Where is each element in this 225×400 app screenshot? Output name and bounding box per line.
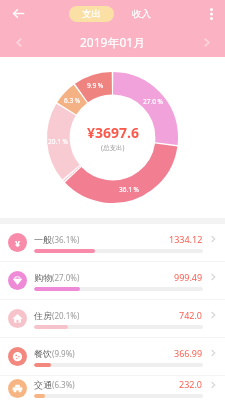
staticText: 9.9 % (87, 81, 104, 90)
button[interactable]: More options (197, 0, 225, 27)
staticText: (27.0%) (52, 272, 80, 283)
staticText: ¥3697.6 (87, 123, 139, 142)
staticText: 999.49 (174, 271, 203, 283)
staticText: 6.3 % (64, 96, 81, 105)
staticText: (总支出) (101, 143, 125, 152)
staticText: (6.3%) (52, 379, 75, 390)
staticText: 住房 (34, 310, 52, 321)
button[interactable]: 餐饮 (0, 338, 225, 375)
button[interactable]: 交通 (0, 376, 225, 400)
button[interactable]: Back (0, 0, 36, 27)
button[interactable]: 收入 (126, 6, 157, 22)
staticText: 27.0 % (143, 97, 163, 106)
button[interactable]: 购物 (0, 262, 225, 299)
staticText: 餐饮 (34, 348, 52, 359)
staticText: (20.1%) (52, 310, 80, 321)
staticText: 366.99 (174, 347, 203, 359)
staticText: 36.1 % (119, 185, 139, 194)
staticText: 交通 (34, 379, 52, 390)
staticText: (9.9%) (52, 348, 75, 359)
staticText: 收入 (132, 8, 151, 20)
staticText: 20.1 % (48, 137, 68, 146)
button[interactable]: ¥ (0, 224, 225, 261)
button[interactable]: Previous month (0, 27, 38, 57)
staticText: (36.1%) (52, 234, 80, 245)
staticText: 2019年01月 (80, 34, 146, 50)
staticText: 一般 (34, 234, 52, 245)
button[interactable]: Next month (187, 27, 225, 57)
staticText: 购物 (34, 272, 52, 283)
staticText: 1334.12 (169, 233, 203, 245)
button[interactable]: 住房 (0, 300, 225, 337)
staticText: 支出 (82, 8, 101, 20)
button[interactable]: 支出 (69, 6, 114, 22)
staticText: 742.0 (179, 309, 203, 321)
staticText: 232.0 (179, 378, 203, 390)
staticText: ¥ (15, 237, 21, 249)
